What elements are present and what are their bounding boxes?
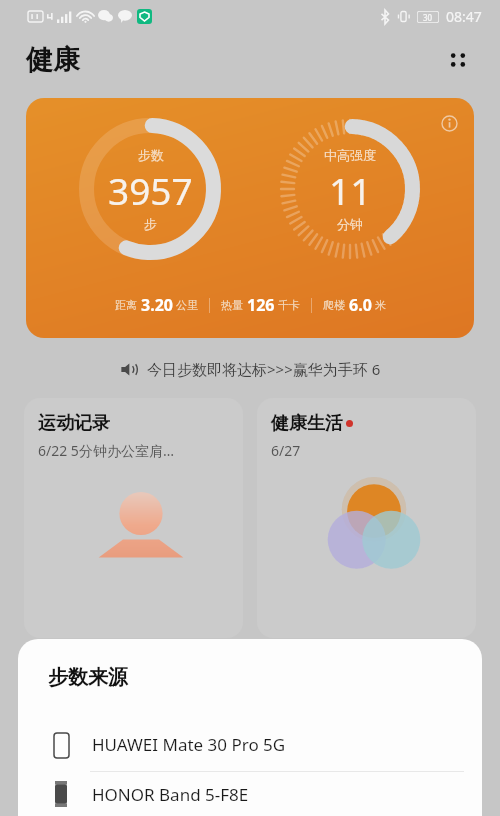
staticText: 爬楼 <box>323 298 345 312</box>
button[interactable]: Information <box>26 98 474 338</box>
staticText: 中高强度 <box>324 147 376 163</box>
staticText: 6.0 <box>349 294 372 316</box>
staticText: 08:47 <box>446 7 482 26</box>
staticText: 11 <box>329 165 372 215</box>
staticText: 热量 <box>221 298 243 312</box>
staticText: 分钟 <box>337 216 363 232</box>
staticText: 6/27 <box>271 441 301 460</box>
staticText: HONOR Band 5-F8E <box>92 783 249 806</box>
button[interactable]: More options <box>436 38 480 82</box>
staticText: 米 <box>375 298 386 312</box>
staticText: 步数来源 <box>48 665 128 690</box>
button[interactable]: 今日步数即将达标>>>赢华为手环 6 <box>0 354 500 384</box>
staticText: 今日步数即将达标>>>赢华为手环 6 <box>147 359 381 379</box>
staticText: 健康 <box>26 43 80 77</box>
button[interactable]: HUAWEI Mate 30 Pro 5G <box>18 718 482 771</box>
staticText: 步 <box>144 216 157 232</box>
staticText: 健康生活 <box>271 412 343 435</box>
staticText: 30 <box>423 12 433 23</box>
staticText: 公里 <box>176 298 198 312</box>
staticText: 3.20 <box>141 294 173 316</box>
staticText: 距离 <box>115 298 137 312</box>
button[interactable]: HONOR Band 5-F8E <box>18 772 482 816</box>
staticText: HUAWEI Mate 30 Pro 5G <box>92 733 286 756</box>
staticText: 运动记录 <box>38 412 110 435</box>
button[interactable]: 健康 <box>26 43 80 77</box>
staticText: 步数 <box>138 147 164 163</box>
staticText: 千卡 <box>278 298 300 312</box>
staticText: 126 <box>247 294 275 316</box>
staticText: 3957 <box>108 165 193 215</box>
button[interactable]: 健康生活 <box>257 398 476 638</box>
staticText: 6/22 5分钟办公室肩… <box>38 441 174 460</box>
button[interactable]: 运动记录 <box>24 398 243 638</box>
button[interactable]: Information <box>434 108 464 138</box>
